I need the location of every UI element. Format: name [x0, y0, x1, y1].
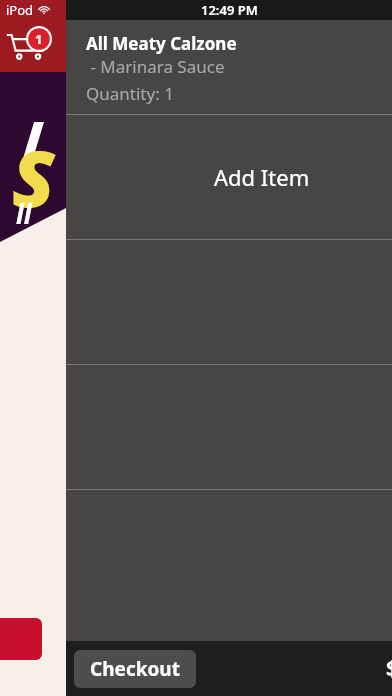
staticText: S [12, 124, 55, 230]
staticText: iPod [6, 1, 34, 19]
button[interactable]: Checkout [74, 650, 196, 688]
staticText: ll [16, 196, 32, 231]
staticText: Checkout [90, 656, 180, 682]
staticText: All Meaty Calzone [86, 32, 392, 55]
staticText: 1 [35, 30, 43, 48]
staticText: $8.99 [386, 654, 392, 683]
staticText: 12:49 PM [201, 1, 258, 19]
staticText: - Marinara Sauce [86, 55, 392, 78]
staticText: Add Item [214, 162, 310, 192]
button[interactable]: Add Item [66, 115, 392, 239]
button[interactable]: All Meaty Calzone [66, 20, 392, 114]
button[interactable]: Cart [4, 26, 60, 68]
button[interactable]: Order [0, 618, 42, 660]
staticText: Quantity: 1 [86, 82, 392, 105]
